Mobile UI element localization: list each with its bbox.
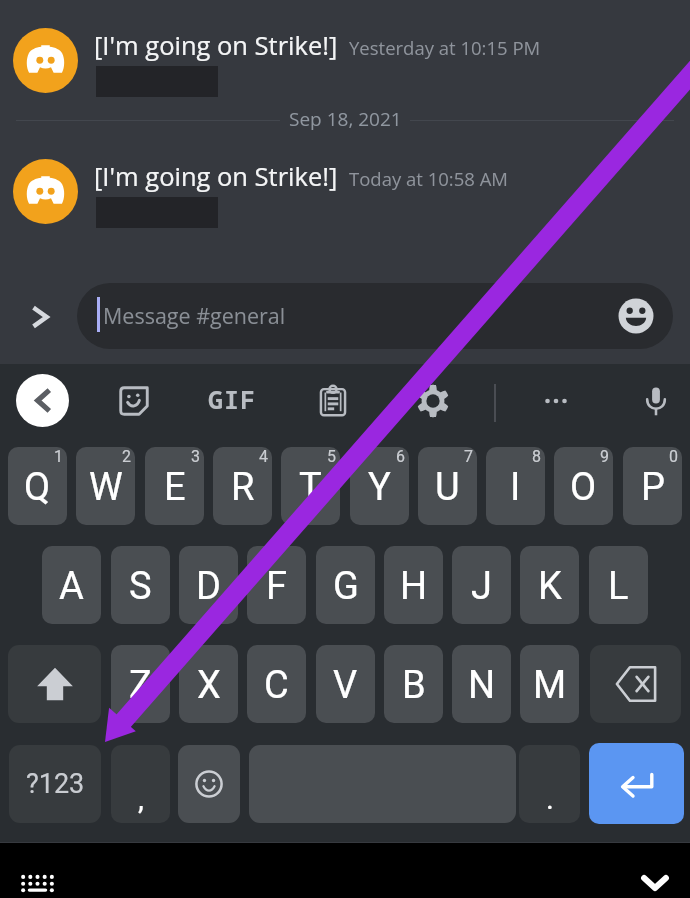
- button[interactable]: L: [589, 546, 648, 624]
- staticText: Y: [368, 465, 391, 510]
- staticText: B: [402, 663, 426, 708]
- staticText: X: [197, 663, 221, 708]
- staticText: O: [570, 465, 597, 510]
- button[interactable]: More: [530, 375, 582, 427]
- button[interactable]: R: [213, 447, 272, 525]
- staticText: 7: [464, 447, 473, 466]
- button[interactable]: P: [623, 447, 682, 525]
- button[interactable]: G: [316, 546, 375, 624]
- button[interactable]: S: [111, 546, 170, 624]
- button[interactable]: Emoji: [618, 298, 654, 334]
- button[interactable]: Y: [350, 447, 409, 525]
- button[interactable]: Hide keyboard: [625, 867, 685, 898]
- staticText: R: [231, 465, 255, 510]
- staticText: U: [435, 465, 460, 510]
- button[interactable]: W: [76, 447, 135, 525]
- staticText: Z: [129, 663, 152, 708]
- button[interactable]: V: [316, 645, 375, 723]
- staticText: D: [196, 564, 221, 609]
- staticText: 0: [669, 447, 678, 466]
- button[interactable]: Voice input: [630, 375, 682, 427]
- button[interactable]: X: [179, 645, 238, 723]
- staticText: Message #general: [103, 301, 286, 330]
- button[interactable]: M: [520, 645, 579, 723]
- staticText: F: [266, 564, 288, 609]
- button[interactable]: H: [384, 546, 443, 624]
- button[interactable]: Message #general: [77, 283, 673, 349]
- staticText: E: [164, 465, 186, 510]
- button[interactable]: Emoji keyboard: [178, 745, 240, 823]
- staticText: V: [333, 663, 358, 708]
- staticText: A: [59, 564, 84, 609]
- staticText: 4: [259, 447, 268, 466]
- button[interactable]: Stickers: [108, 375, 160, 427]
- staticText: C: [264, 663, 289, 708]
- staticText: M: [533, 663, 567, 708]
- button[interactable]: U: [418, 447, 477, 525]
- staticText: 2: [122, 447, 131, 466]
- button[interactable]: GIF: [200, 374, 264, 424]
- button[interactable]: Avatar: [13, 28, 78, 93]
- staticText: L: [608, 564, 629, 609]
- button[interactable]: Enter: [589, 743, 684, 824]
- staticText: W: [89, 465, 123, 510]
- staticText: K: [538, 564, 562, 609]
- staticText: ?123: [26, 768, 85, 800]
- button[interactable]: Back: [16, 374, 69, 427]
- button[interactable]: Avatar: [13, 159, 78, 224]
- staticText: G: [333, 564, 359, 609]
- button[interactable]: ,: [111, 745, 170, 823]
- staticText: T: [299, 465, 322, 510]
- staticText: N: [468, 663, 496, 708]
- button[interactable]: Backspace: [590, 645, 681, 723]
- staticText: Yesterday at 10:15 PM: [349, 35, 541, 60]
- button[interactable]: Open actions: [18, 294, 64, 340]
- button[interactable]: Clipboard: [307, 375, 359, 427]
- button[interactable]: B: [384, 645, 443, 723]
- button[interactable]: D: [179, 546, 238, 624]
- button[interactable]: C: [247, 645, 306, 723]
- button[interactable]: F: [247, 546, 306, 624]
- button[interactable]: A: [42, 546, 101, 624]
- staticText: H: [400, 564, 428, 609]
- button[interactable]: Shift: [8, 645, 101, 723]
- staticText: GIF: [208, 382, 257, 416]
- staticText: 1: [54, 447, 63, 466]
- button[interactable]: O: [554, 447, 613, 525]
- button[interactable]: .: [519, 745, 580, 823]
- button[interactable]: ?123: [9, 745, 101, 823]
- button[interactable]: Settings: [407, 375, 459, 427]
- button[interactable]: E: [145, 447, 204, 525]
- staticText: J: [471, 564, 492, 609]
- button[interactable]: Z: [111, 645, 170, 723]
- staticText: S: [129, 564, 152, 609]
- staticText: 8: [532, 447, 541, 466]
- staticText: P: [641, 465, 665, 510]
- button[interactable]: K: [520, 546, 579, 624]
- staticText: Q: [24, 465, 51, 510]
- button[interactable]: J: [452, 546, 511, 624]
- staticText: I: [510, 465, 521, 510]
- staticText: Today at 10:58 AM: [349, 166, 508, 191]
- staticText: 5: [327, 447, 336, 466]
- staticText: Sep 18, 2021: [289, 106, 402, 132]
- staticText: 3: [191, 447, 200, 466]
- staticText: [I'm going on Strike!]: [94, 159, 338, 194]
- staticText: ,: [138, 781, 144, 816]
- staticText: [I'm going on Strike!]: [94, 28, 338, 63]
- staticText: 6: [396, 447, 405, 466]
- button[interactable]: N: [452, 645, 511, 723]
- button[interactable]: T: [281, 447, 340, 525]
- staticText: .: [546, 781, 554, 816]
- button[interactable]: Q: [8, 447, 67, 525]
- button[interactable]: Switch keyboard: [7, 867, 67, 898]
- button[interactable]: I: [486, 447, 545, 525]
- staticText: 9: [600, 447, 609, 466]
